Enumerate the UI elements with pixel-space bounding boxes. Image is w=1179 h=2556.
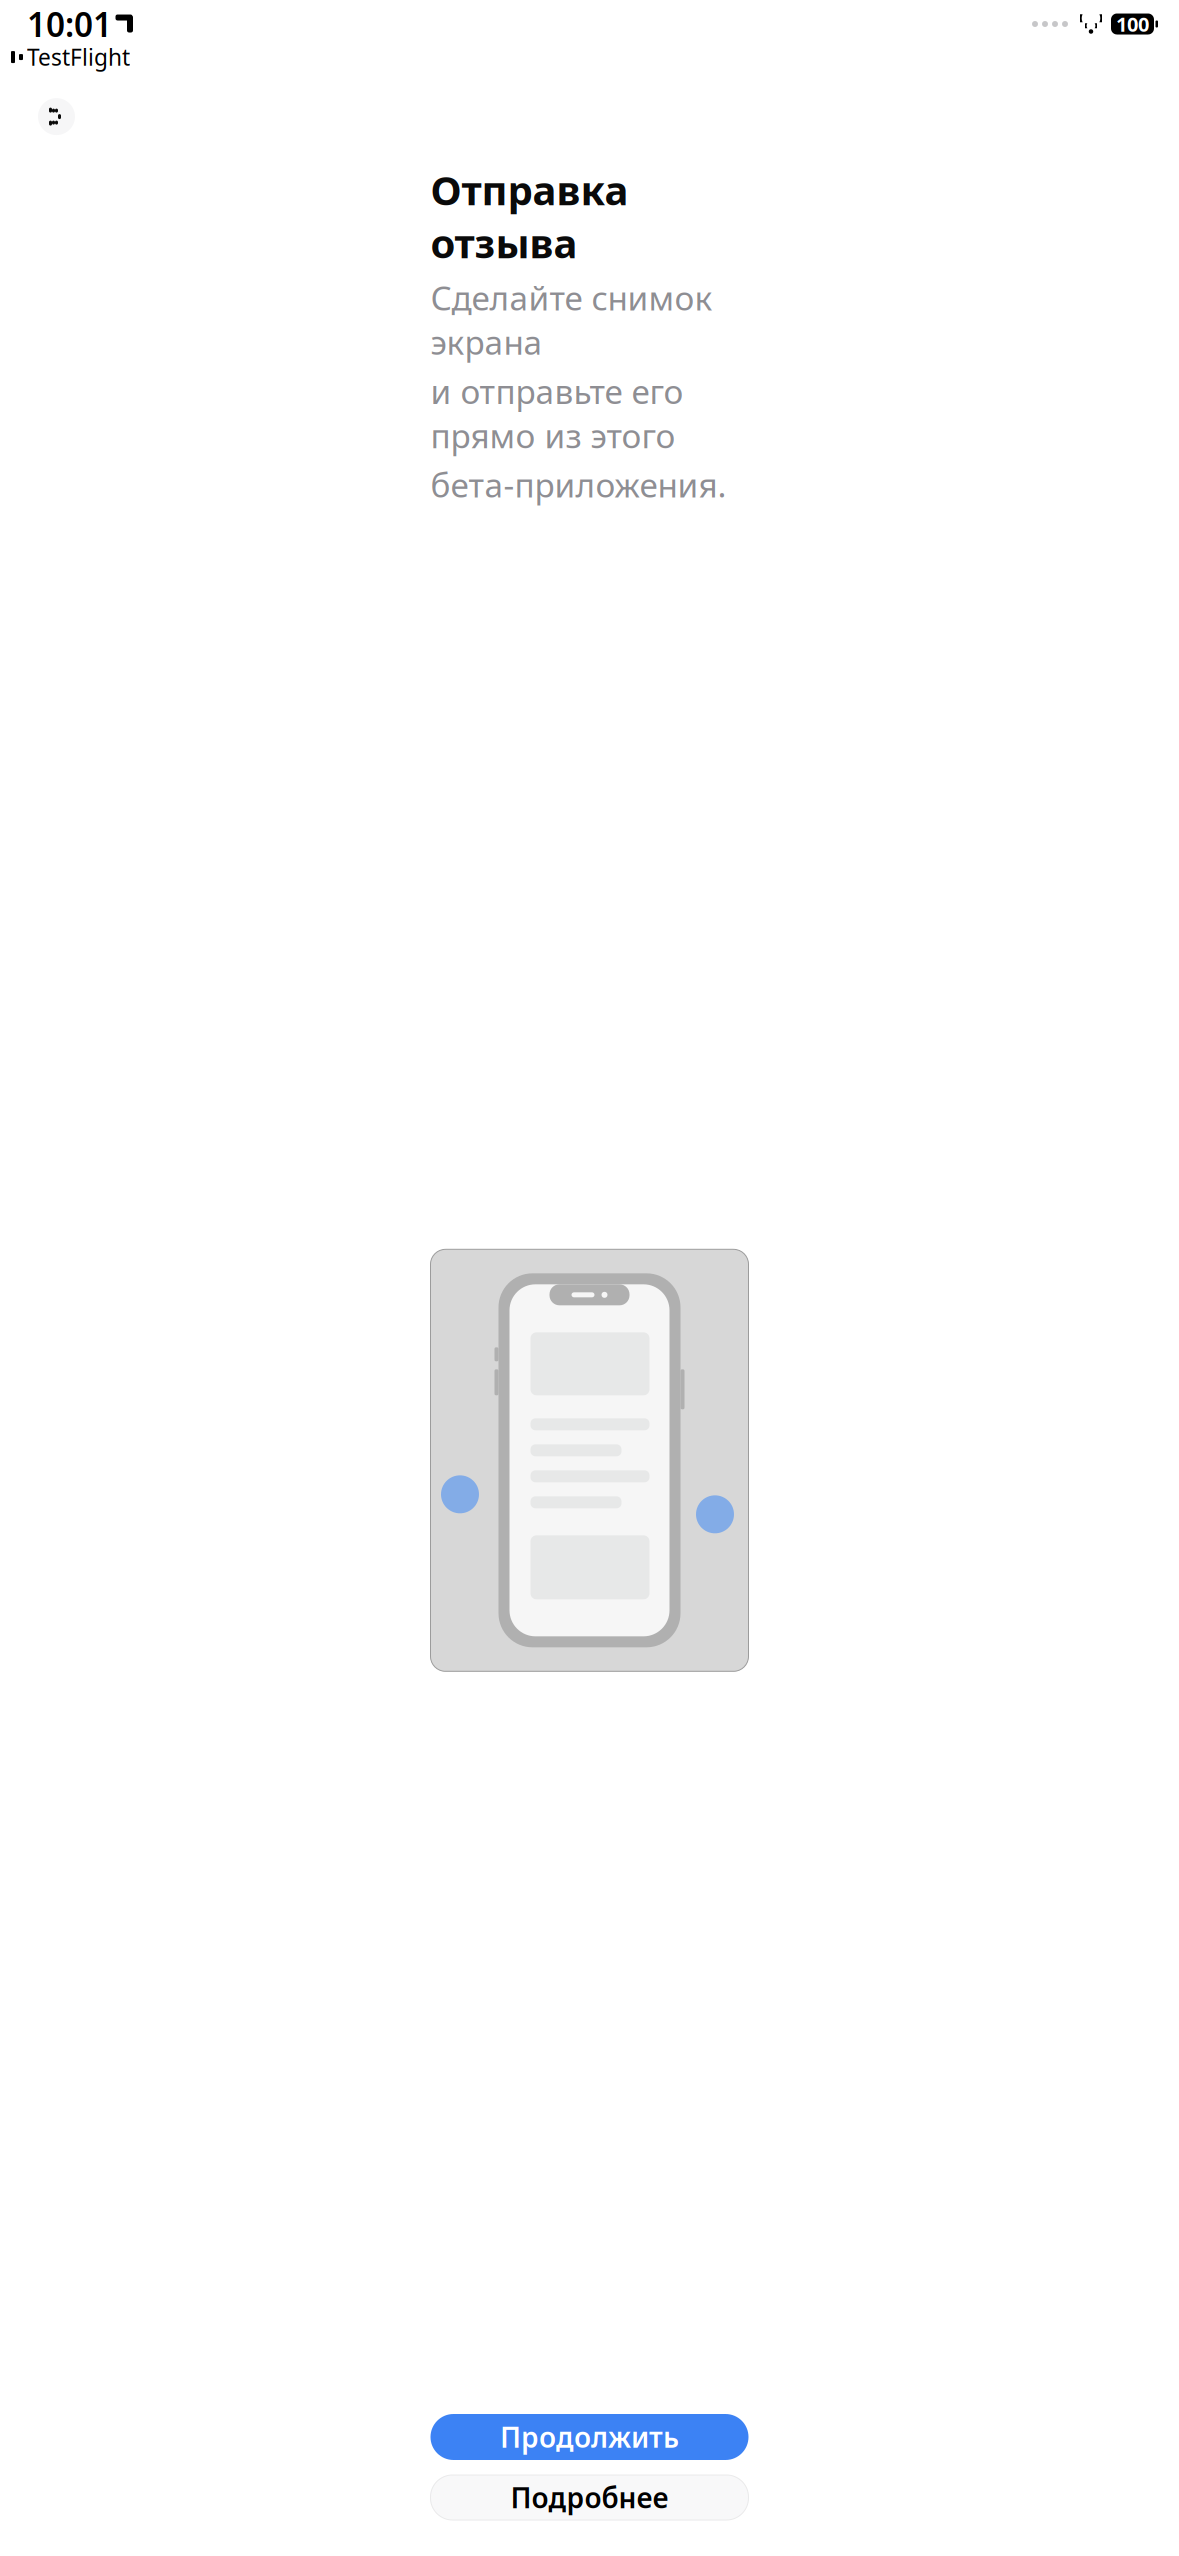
staticText: Продолжить	[500, 2418, 679, 2456]
staticText: 100	[1116, 11, 1149, 37]
staticText: и отправьте его прямо из этого	[430, 369, 683, 457]
staticText: Подробнее	[510, 2479, 668, 2516]
staticText: Сделайте снимок экрана	[430, 275, 712, 364]
button[interactable]: Back	[38, 98, 75, 135]
staticText: 10:01	[27, 2, 112, 46]
button[interactable]: Продолжить	[430, 2414, 748, 2460]
staticText: Отправка отзыва	[430, 163, 628, 269]
button[interactable]: TestFlight	[9, 40, 133, 74]
staticText: TestFlight	[27, 42, 130, 72]
staticText: бета-приложения.	[430, 462, 726, 507]
button[interactable]: Подробнее	[430, 2475, 748, 2520]
